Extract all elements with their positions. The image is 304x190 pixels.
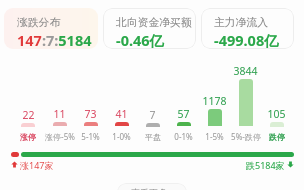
staticText: 涨147家 xyxy=(20,159,54,170)
staticText: 105 xyxy=(267,107,286,121)
staticText: 11 xyxy=(53,107,66,121)
staticText: 平盘 xyxy=(145,132,161,142)
staticText: 涨跌分布 xyxy=(17,16,61,30)
staticText: 1-0% xyxy=(112,131,131,142)
staticText: 涨停 xyxy=(20,132,36,142)
staticText: 5-1% xyxy=(81,131,100,142)
staticText: -0.46亿 xyxy=(116,30,165,49)
staticText: 7 xyxy=(149,108,156,122)
staticText: 查看更多 › xyxy=(131,186,173,190)
staticText: 41 xyxy=(115,107,128,121)
staticText: -499.08亿 xyxy=(214,30,279,49)
staticText: 北向资金净买额 xyxy=(116,16,192,30)
staticText: 跌停 xyxy=(269,132,285,142)
staticText: 147:7:5184 xyxy=(17,30,92,49)
button[interactable]: 涨跌分布 xyxy=(4,8,98,49)
staticText: 跌5184家 xyxy=(246,159,285,170)
button[interactable]: 北向资金净买额 xyxy=(103,8,196,49)
staticText: 22 xyxy=(22,108,35,122)
button[interactable]: 查看更多 › xyxy=(117,183,187,190)
staticText: 0-1% xyxy=(174,131,193,142)
staticText: 5%-跌停 xyxy=(231,131,261,142)
staticText: 主力净流入 xyxy=(214,16,268,30)
staticText: 3844 xyxy=(233,64,258,78)
staticText: 涨停-5% xyxy=(45,131,75,142)
staticText: 1-5% xyxy=(205,131,224,142)
staticText: 73 xyxy=(84,107,97,121)
staticText: 57 xyxy=(177,107,190,121)
button[interactable]: 主力净流入 xyxy=(201,8,294,49)
staticText: 1178 xyxy=(202,94,227,108)
